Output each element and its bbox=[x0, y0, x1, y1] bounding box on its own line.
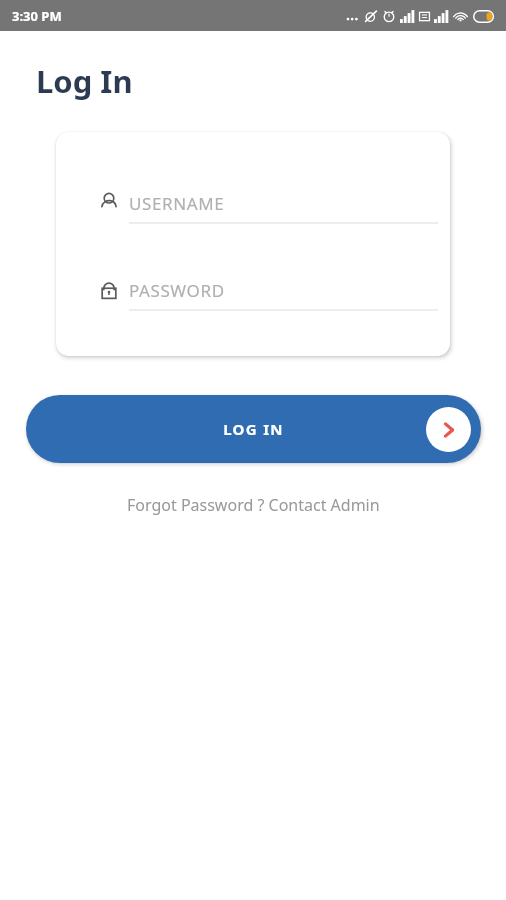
button[interactable]: Password bbox=[96, 277, 438, 311]
staticText: PASSWORD bbox=[129, 279, 225, 302]
button[interactable]: Forgot Password ? Contact Admin bbox=[127, 494, 380, 516]
staticText: Log In bbox=[36, 60, 133, 102]
staticText: USERNAME bbox=[129, 192, 225, 215]
staticText: LOG IN bbox=[223, 419, 284, 439]
button[interactable]: LOG IN bbox=[26, 395, 481, 463]
button[interactable]: Username bbox=[96, 190, 438, 224]
staticText: 3:30 PM bbox=[12, 7, 62, 25]
